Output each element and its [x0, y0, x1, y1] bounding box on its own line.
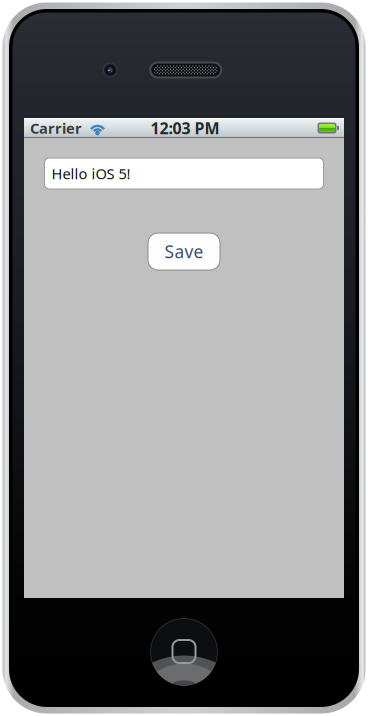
button[interactable]: Save [148, 233, 220, 270]
staticText: Carrier [30, 118, 82, 138]
staticText: 12:03 PM [150, 117, 219, 139]
staticText: Hello iOS 5! [51, 164, 130, 183]
button[interactable]: Home [149, 617, 219, 687]
staticText: Save [164, 240, 203, 263]
